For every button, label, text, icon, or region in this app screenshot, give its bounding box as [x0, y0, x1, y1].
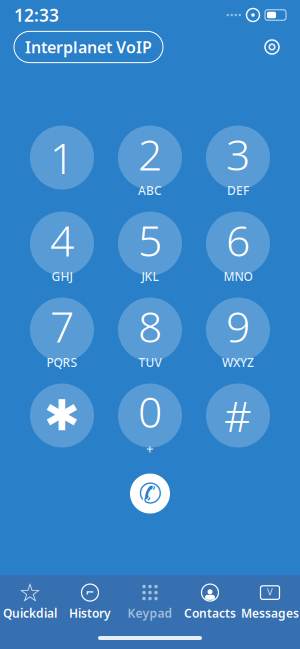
staticText: WXYZ: [222, 354, 254, 370]
button[interactable]: v: [240, 575, 300, 627]
staticText: 4: [50, 212, 74, 268]
staticText: History: [69, 605, 111, 621]
button[interactable]: 7: [30, 297, 94, 361]
staticText: ⌐: [85, 586, 94, 599]
button[interactable]: Keypad: [120, 575, 180, 627]
button[interactable]: 5: [118, 211, 182, 275]
staticText: Contacts: [184, 605, 236, 621]
staticText: Interplanet VoIP: [25, 36, 152, 58]
button[interactable]: 8: [118, 297, 182, 361]
button[interactable]: #: [206, 383, 270, 447]
staticText: 6: [226, 212, 250, 268]
staticText: 9: [226, 298, 250, 354]
staticText: ✆: [138, 478, 161, 509]
staticText: 3: [226, 126, 250, 182]
staticText: +: [146, 439, 154, 457]
staticText: 2: [138, 126, 162, 182]
staticText: 7: [50, 298, 74, 354]
staticText: ABC: [138, 182, 162, 198]
button[interactable]: ⌐: [60, 575, 120, 627]
button[interactable]: ☆: [0, 575, 60, 627]
staticText: GHJ: [51, 268, 72, 284]
button[interactable]: 6: [206, 211, 270, 275]
staticText: v: [267, 583, 273, 598]
button[interactable]: 0: [118, 383, 182, 447]
button[interactable]: 4: [30, 211, 94, 275]
button[interactable]: 9: [206, 297, 270, 361]
staticText: ☆: [18, 578, 41, 607]
staticText: #: [224, 387, 252, 444]
staticText: Quickdial: [3, 605, 57, 621]
button[interactable]: ✱: [30, 383, 94, 447]
staticText: 1: [50, 129, 74, 186]
staticText: Messages: [241, 605, 299, 621]
button[interactable]: 3: [206, 125, 270, 189]
button[interactable]: Settings: [258, 33, 286, 61]
staticText: Keypad: [127, 605, 172, 621]
button[interactable]: Interplanet VoIP: [14, 31, 163, 63]
staticText: 8: [138, 298, 162, 354]
button[interactable]: 2: [118, 125, 182, 189]
staticText: PQRS: [46, 354, 77, 370]
staticText: 0: [138, 383, 162, 439]
staticText: JKL: [141, 268, 158, 284]
staticText: 12:33: [14, 3, 59, 26]
button[interactable]: Call: [130, 473, 170, 513]
staticText: MNO: [223, 268, 252, 284]
staticText: 5: [138, 212, 162, 268]
staticText: TUV: [138, 354, 161, 370]
staticText: ✱: [44, 391, 80, 440]
button[interactable]: 1: [30, 125, 94, 189]
button[interactable]: Contacts: [180, 575, 240, 627]
staticText: DEF: [227, 182, 249, 198]
